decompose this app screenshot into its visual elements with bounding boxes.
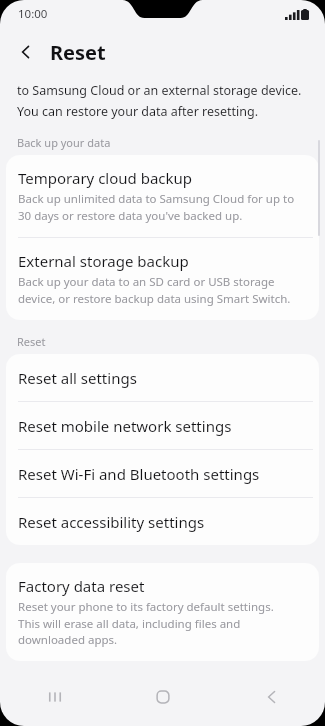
staticText: Back up your data	[17, 135, 111, 150]
button[interactable]: External storage backup	[6, 238, 319, 320]
button[interactable]: Back	[217, 668, 325, 726]
button[interactable]: Factory data reset	[6, 563, 319, 661]
button[interactable]: Reset mobile network settings	[6, 402, 319, 449]
staticText: to Samsung Cloud or an external storage …	[17, 82, 302, 119]
staticText: Reset	[50, 39, 106, 66]
staticText: Reset Wi-Fi and Bluetooth settings	[18, 464, 260, 484]
staticText: Reset	[17, 334, 46, 349]
staticText: Back up your data to an SD card or USB s…	[18, 274, 291, 306]
staticText: Factory data reset	[18, 576, 145, 596]
button[interactable]: Recents	[0, 668, 109, 726]
staticText: Reset your phone to its factory default …	[18, 599, 274, 647]
staticText: Reset mobile network settings	[18, 416, 232, 436]
staticText: Back up unlimited data to Samsung Cloud …	[18, 191, 295, 223]
button[interactable]: Reset accessibility settings	[6, 498, 319, 545]
button[interactable]: Back	[8, 34, 44, 70]
staticText: 10:00	[18, 6, 48, 22]
staticText: External storage backup	[18, 251, 189, 271]
button[interactable]: Reset Wi-Fi and Bluetooth settings	[6, 450, 319, 497]
staticText: Reset accessibility settings	[18, 512, 205, 532]
button[interactable]: Reset all settings	[6, 354, 319, 401]
button[interactable]: Temporary cloud backup	[6, 155, 319, 237]
staticText: Reset all settings	[18, 368, 137, 388]
button[interactable]: Home	[109, 668, 217, 726]
staticText: Temporary cloud backup	[18, 168, 193, 188]
